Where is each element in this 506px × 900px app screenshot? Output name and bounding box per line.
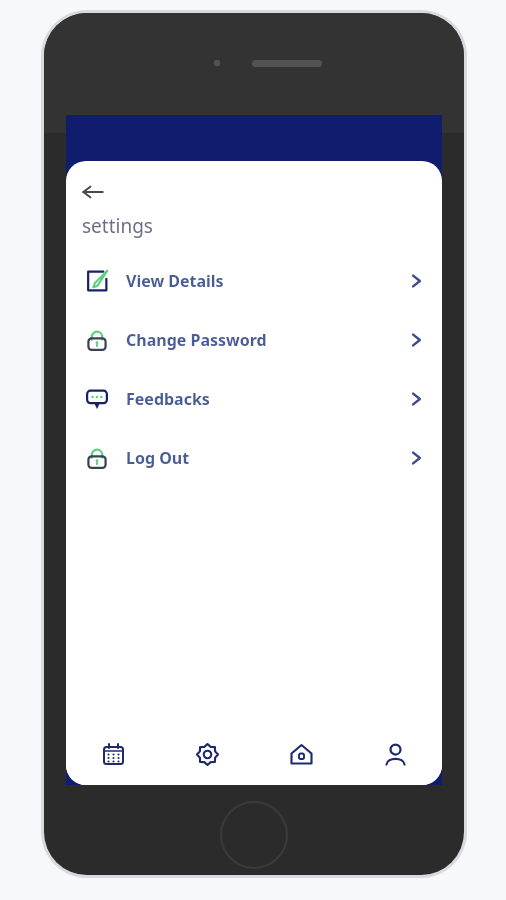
button[interactable]: Back [74, 173, 112, 211]
staticText: Log Out [126, 447, 190, 469]
staticText: Change Password [126, 329, 267, 351]
staticText: View Details [126, 270, 224, 292]
staticText: settings [82, 213, 153, 239]
button[interactable]: Log Out [66, 428, 442, 487]
button[interactable]: Home [254, 723, 348, 785]
button[interactable]: Settings [160, 723, 254, 785]
button[interactable]: View Details [66, 251, 442, 310]
button[interactable]: Feedbacks [66, 369, 442, 428]
button[interactable]: Change Password [66, 310, 442, 369]
button[interactable]: Calendar [66, 723, 160, 785]
staticText: Feedbacks [126, 388, 210, 410]
button[interactable]: Profile [348, 723, 442, 785]
